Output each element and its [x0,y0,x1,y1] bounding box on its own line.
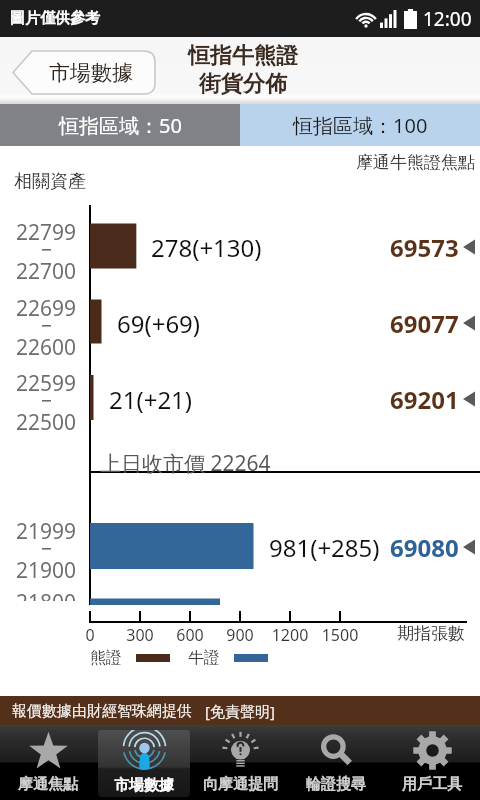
staticText: 街貨分佈 [199,70,287,98]
staticText: 恒指區域：50 [59,112,182,139]
staticText: 熊證 [90,648,122,668]
other: 摩通焦點 [29,731,68,770]
staticText: 22500 [16,408,77,430]
staticText: 摩通焦點 [18,775,78,794]
staticText: 69077 [390,307,459,340]
other: 市場數據 [125,732,164,771]
button[interactable]: 摩通焦點 [0,725,96,800]
staticText: 輪證搜尋 [306,775,366,794]
staticText: 21(+21) [109,383,193,416]
staticText: 市場數據 [49,60,133,86]
button[interactable]: 市場數據 [13,51,155,94]
button[interactable]: 市場數據 [96,725,192,800]
staticText: 69573 [390,231,459,264]
staticText: 1200 [265,624,315,646]
staticText: 900 [215,624,265,646]
staticText: 0 [65,624,115,646]
staticText: 報價數據由財經智珠網提供 [12,702,192,721]
staticText: 600 [165,624,215,646]
button[interactable]: 恒指區域：100 [240,104,480,146]
button[interactable]: [免責聲明] [205,701,275,721]
staticText: 恒指區域：100 [293,112,428,139]
staticText: 21800 [16,588,77,601]
staticText: 22600 [16,333,77,355]
staticText: 1500 [315,624,365,646]
staticText: 相關資產 [14,170,86,193]
staticText: 69(+69) [117,307,201,340]
other: 用戶工具 [413,731,452,770]
staticText: 21999 [16,517,77,539]
staticText: 牛證 [188,648,220,668]
other: 輪證搜尋 [317,731,356,770]
staticText: 22699 [16,294,77,316]
staticText: 12:00 [423,6,472,32]
staticText: 69080 [390,531,459,564]
button[interactable]: 恒指區域：50 [0,104,240,146]
staticText: 300 [115,624,165,646]
staticText: 圖片僅供參考 [10,9,100,28]
other: 向摩通提問 [221,731,260,770]
staticText: 向摩通提問 [203,775,278,794]
button[interactable]: 向摩通提問 [192,725,288,800]
staticText: 上日收市價 22264 [100,449,271,478]
staticText: 市場數據 [114,776,174,795]
button[interactable]: 用戶工具 [384,725,480,800]
staticText: 摩通牛熊證焦點 [356,152,475,173]
staticText: 278(+130) [151,231,262,264]
staticText: 22700 [16,257,77,279]
staticText: 981(+285) [269,531,380,564]
staticText: 恒指牛熊證 [188,42,298,70]
staticText: 用戶工具 [402,775,462,794]
staticText: [免責聲明] [205,701,275,721]
staticText: 21900 [16,556,77,578]
staticText: 22799 [16,218,77,240]
staticText: 69201 [390,383,459,416]
button[interactable]: 輪證搜尋 [288,725,384,800]
staticText: 期指張數 [397,623,465,644]
staticText: 22599 [16,369,77,391]
